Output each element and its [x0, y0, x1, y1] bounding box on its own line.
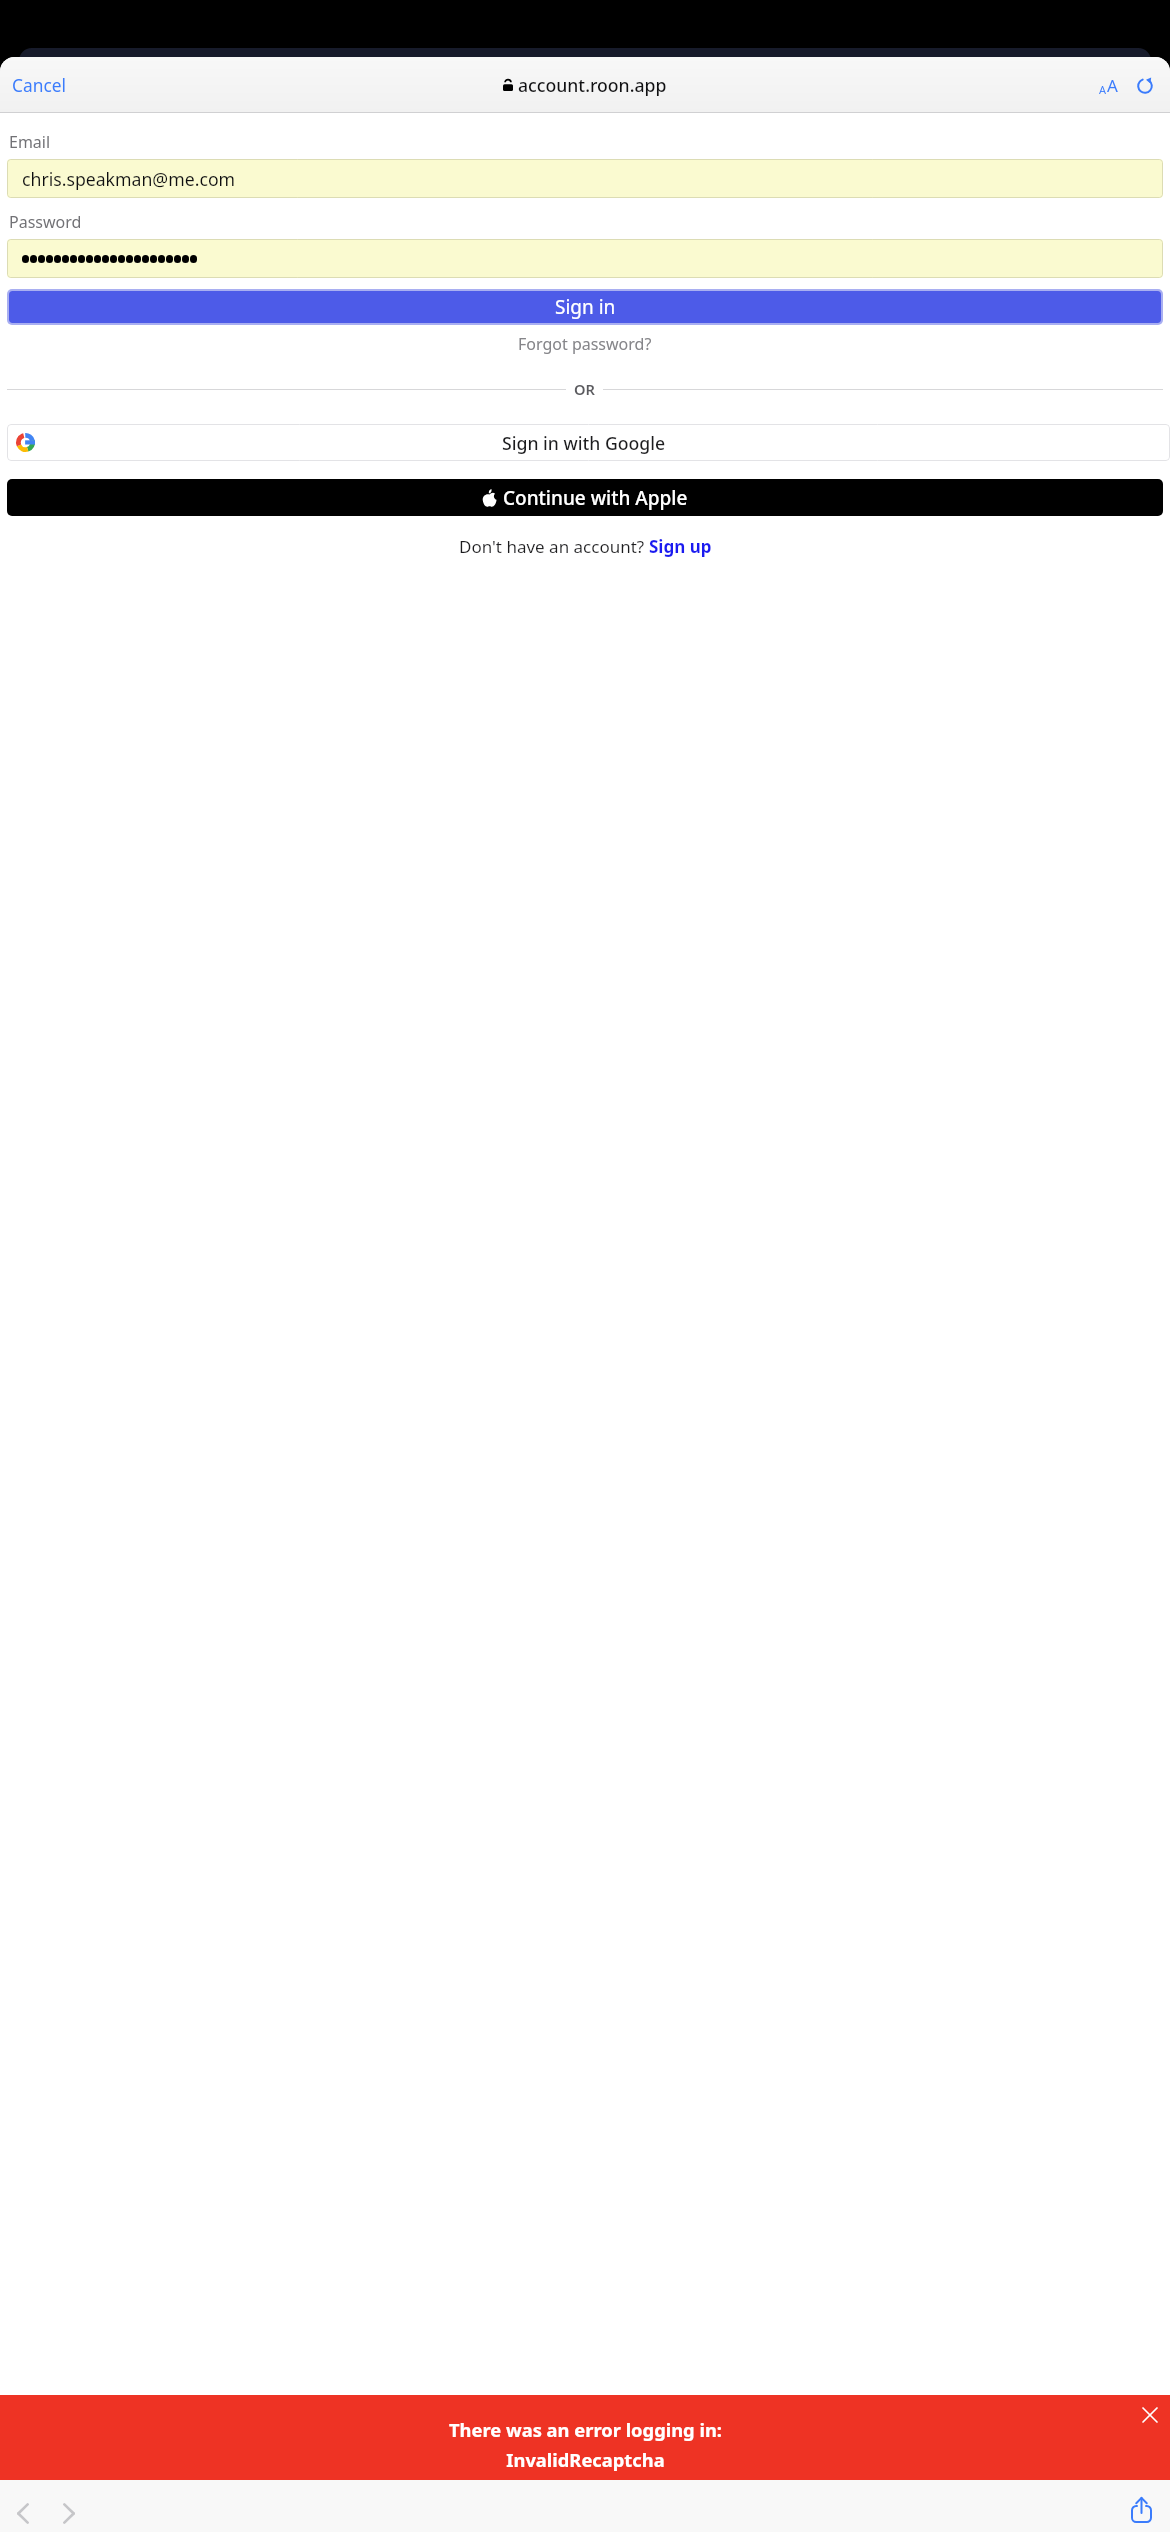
staticText: There was an error logging in: — [449, 2417, 722, 2442]
staticText: Continue with Apple — [503, 485, 688, 511]
button[interactable]: Continue with Apple — [7, 479, 1163, 516]
staticText: Sign in — [555, 294, 616, 320]
button[interactable]: Reload — [1128, 69, 1161, 102]
button[interactable]: Forgot password? — [515, 330, 655, 358]
button[interactable]: Back — [3, 2493, 43, 2532]
staticText: A — [1099, 82, 1107, 97]
staticText: Don't have an account? — [459, 535, 649, 558]
button[interactable]: Share — [1121, 2490, 1161, 2530]
staticText: account.roon.app — [518, 73, 667, 97]
staticText: Sign in with Google — [502, 431, 666, 455]
button[interactable]: Forward — [49, 2493, 89, 2532]
staticText: A — [1107, 74, 1118, 97]
button[interactable]: account.roon.app — [500, 70, 670, 100]
button[interactable]: Don't have an account? — [457, 533, 714, 560]
button[interactable]: Sign in with Google — [7, 424, 1170, 461]
button[interactable]: Sign in — [9, 291, 1161, 323]
button[interactable]: Dismiss error — [1136, 2401, 1163, 2428]
staticText: Sign up — [649, 535, 712, 558]
staticText: chris.speakman@me.com — [22, 167, 236, 191]
button[interactable]: Text size — [1092, 69, 1125, 102]
staticText: Password — [9, 211, 82, 233]
staticText: InvalidRecaptcha — [506, 2447, 665, 2472]
staticText: OR — [574, 379, 595, 399]
button[interactable] — [7, 239, 1163, 278]
button[interactable]: Cancel — [9, 68, 69, 102]
staticText: Forgot password? — [518, 333, 652, 355]
staticText: Cancel — [12, 73, 66, 97]
button[interactable]: chris.speakman@me.com — [7, 159, 1163, 198]
staticText: Email — [9, 131, 51, 153]
